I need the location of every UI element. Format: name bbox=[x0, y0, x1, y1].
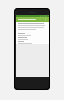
button[interactable]: More options bbox=[16, 17, 49, 22]
button[interactable] bbox=[16, 40, 49, 44]
button[interactable] bbox=[16, 32, 49, 36]
button[interactable]: More options bbox=[44, 18, 47, 21]
button[interactable] bbox=[18, 23, 47, 30]
button[interactable] bbox=[16, 36, 49, 40]
